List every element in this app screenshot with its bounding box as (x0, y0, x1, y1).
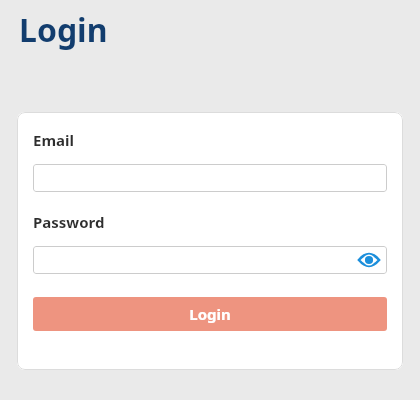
button[interactable]: Login (33, 297, 387, 331)
button[interactable]: Show password (33, 246, 387, 274)
button[interactable] (33, 164, 387, 192)
staticText: Email (33, 130, 74, 150)
staticText: Login (19, 8, 108, 52)
button[interactable]: Show password (357, 248, 381, 272)
staticText: Login (189, 304, 231, 324)
staticText: Password (33, 212, 105, 232)
